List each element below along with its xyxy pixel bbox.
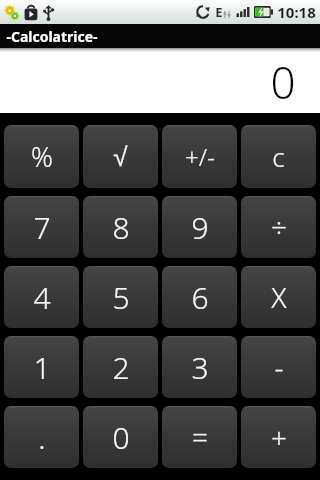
button[interactable]: -: [241, 336, 316, 398]
staticText: -: [274, 348, 284, 386]
staticText: E: [215, 3, 223, 21]
staticText: %: [31, 138, 53, 175]
staticText: 6: [191, 277, 209, 318]
button[interactable]: 3: [162, 336, 237, 398]
button[interactable]: +/-: [162, 125, 237, 188]
staticText: ÷: [271, 208, 287, 246]
staticText: c: [272, 139, 285, 174]
button[interactable]: 6: [162, 266, 237, 328]
button[interactable]: =: [162, 406, 237, 468]
staticText: √: [113, 142, 128, 171]
button[interactable]: 5: [83, 266, 158, 328]
staticText: 7: [33, 207, 51, 248]
staticText: 0: [270, 52, 296, 111]
button[interactable]: 0: [83, 406, 158, 468]
staticText: 4: [33, 277, 51, 318]
button[interactable]: .: [4, 406, 79, 468]
button[interactable]: 1: [4, 336, 79, 398]
staticText: +: [271, 418, 287, 456]
button[interactable]: c: [241, 125, 316, 188]
staticText: 1: [33, 347, 51, 388]
staticText: 9: [191, 207, 209, 248]
staticText: 5: [112, 277, 130, 318]
button[interactable]: ÷: [241, 196, 316, 258]
button[interactable]: X: [241, 266, 316, 328]
staticText: =: [192, 418, 208, 456]
button[interactable]: %: [4, 125, 79, 188]
button[interactable]: 4: [4, 266, 79, 328]
button[interactable]: 9: [162, 196, 237, 258]
button[interactable]: 8: [83, 196, 158, 258]
staticText: 10:18: [277, 2, 316, 22]
staticText: 2: [112, 347, 130, 388]
button[interactable]: 7: [4, 196, 79, 258]
staticText: 0: [112, 417, 130, 458]
button[interactable]: 2: [83, 336, 158, 398]
staticText: .: [38, 417, 46, 458]
staticText: -Calcolatrice-: [6, 27, 98, 46]
button[interactable]: √: [83, 125, 158, 188]
staticText: +/-: [185, 140, 215, 173]
button[interactable]: +: [241, 406, 316, 468]
staticText: X: [271, 278, 287, 316]
staticText: 8: [112, 207, 130, 248]
staticText: 3: [191, 347, 209, 388]
